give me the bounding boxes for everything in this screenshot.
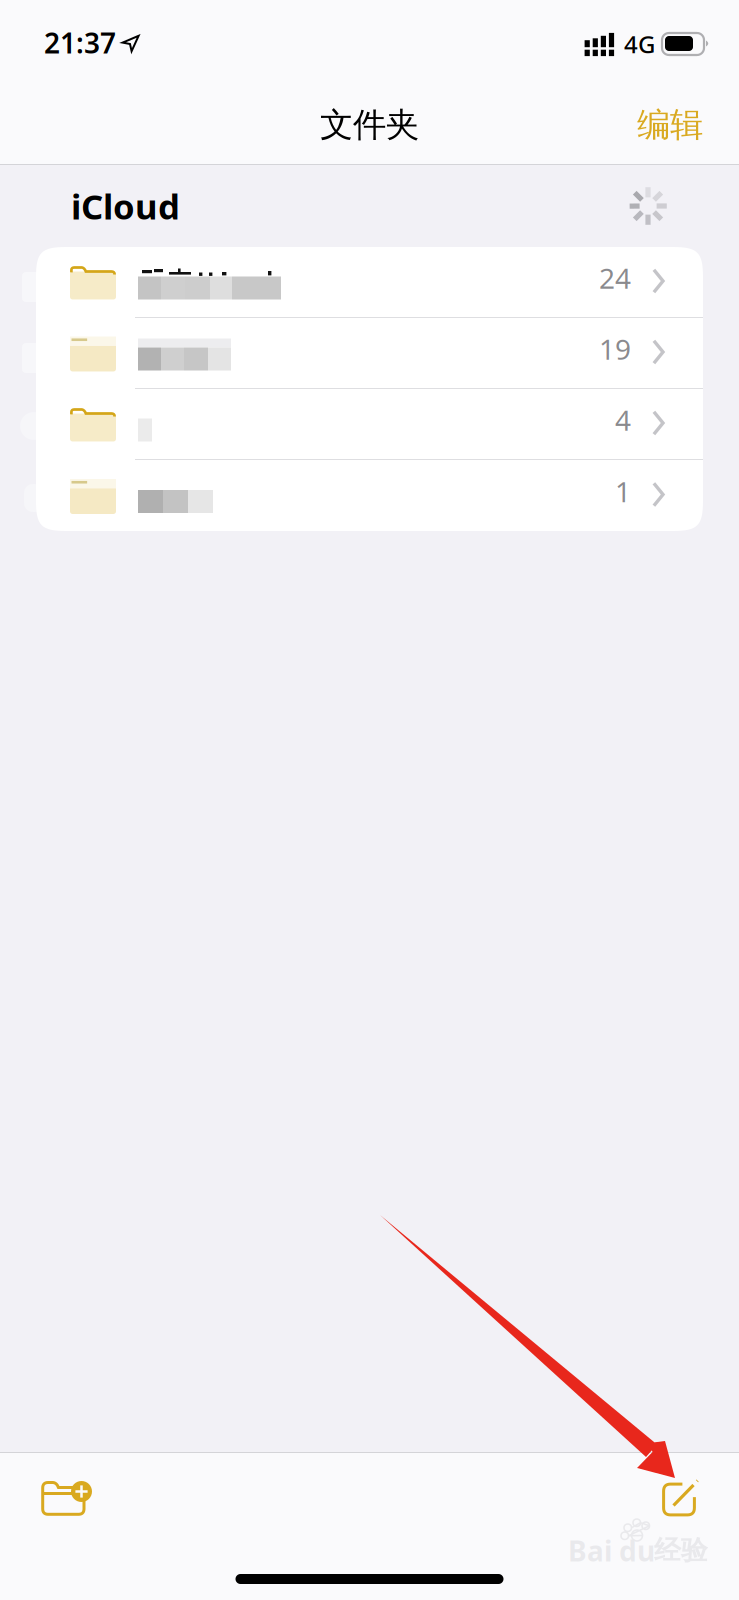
staticText: 编辑 [637, 104, 703, 145]
button[interactable]: 1 [36, 460, 703, 531]
button[interactable]: 4 [36, 389, 703, 460]
staticText: 4 [615, 401, 631, 439]
staticText: 文件夹 [320, 104, 419, 145]
staticText: 经验 [654, 1534, 708, 1567]
staticText: 21:37 [44, 24, 116, 61]
staticText: 1 [615, 473, 631, 510]
staticText: iCloud [71, 183, 180, 229]
button[interactable]: New Folder [0, 1453, 116, 1538]
staticText: 24 [599, 259, 631, 297]
staticText: du [619, 1532, 655, 1569]
button[interactable]: 编辑 [621, 94, 739, 155]
staticText: 4G [624, 28, 655, 60]
button[interactable]: 19 [36, 318, 703, 389]
button[interactable]: 24 [36, 247, 703, 318]
button[interactable]: New Note [638, 1452, 739, 1539]
staticText: 19 [599, 330, 631, 368]
staticText: Bai [568, 1532, 612, 1569]
